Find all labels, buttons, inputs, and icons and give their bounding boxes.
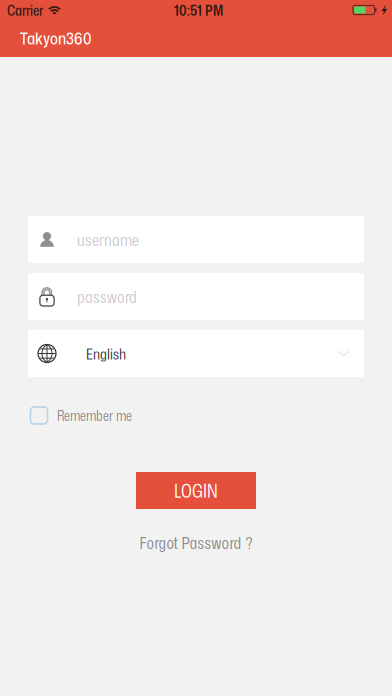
button[interactable]: English — [28, 330, 364, 377]
staticText: 10:51 PM — [174, 0, 223, 20]
button[interactable]: username — [28, 216, 364, 263]
staticText: password — [77, 285, 137, 308]
staticText: username — [77, 228, 139, 251]
staticText: Remember me — [57, 405, 132, 425]
staticText: English — [86, 343, 126, 364]
button[interactable]: Remember me — [30, 407, 132, 424]
staticText: Takyon360 — [20, 27, 91, 50]
staticText: Carrier — [7, 0, 43, 20]
staticText: LOGIN — [174, 477, 218, 504]
button[interactable]: LOGIN — [136, 472, 256, 509]
button[interactable]: Forgot Password ? — [139, 534, 252, 551]
staticText: Forgot Password ? — [139, 531, 252, 554]
button[interactable]: password — [28, 273, 364, 320]
